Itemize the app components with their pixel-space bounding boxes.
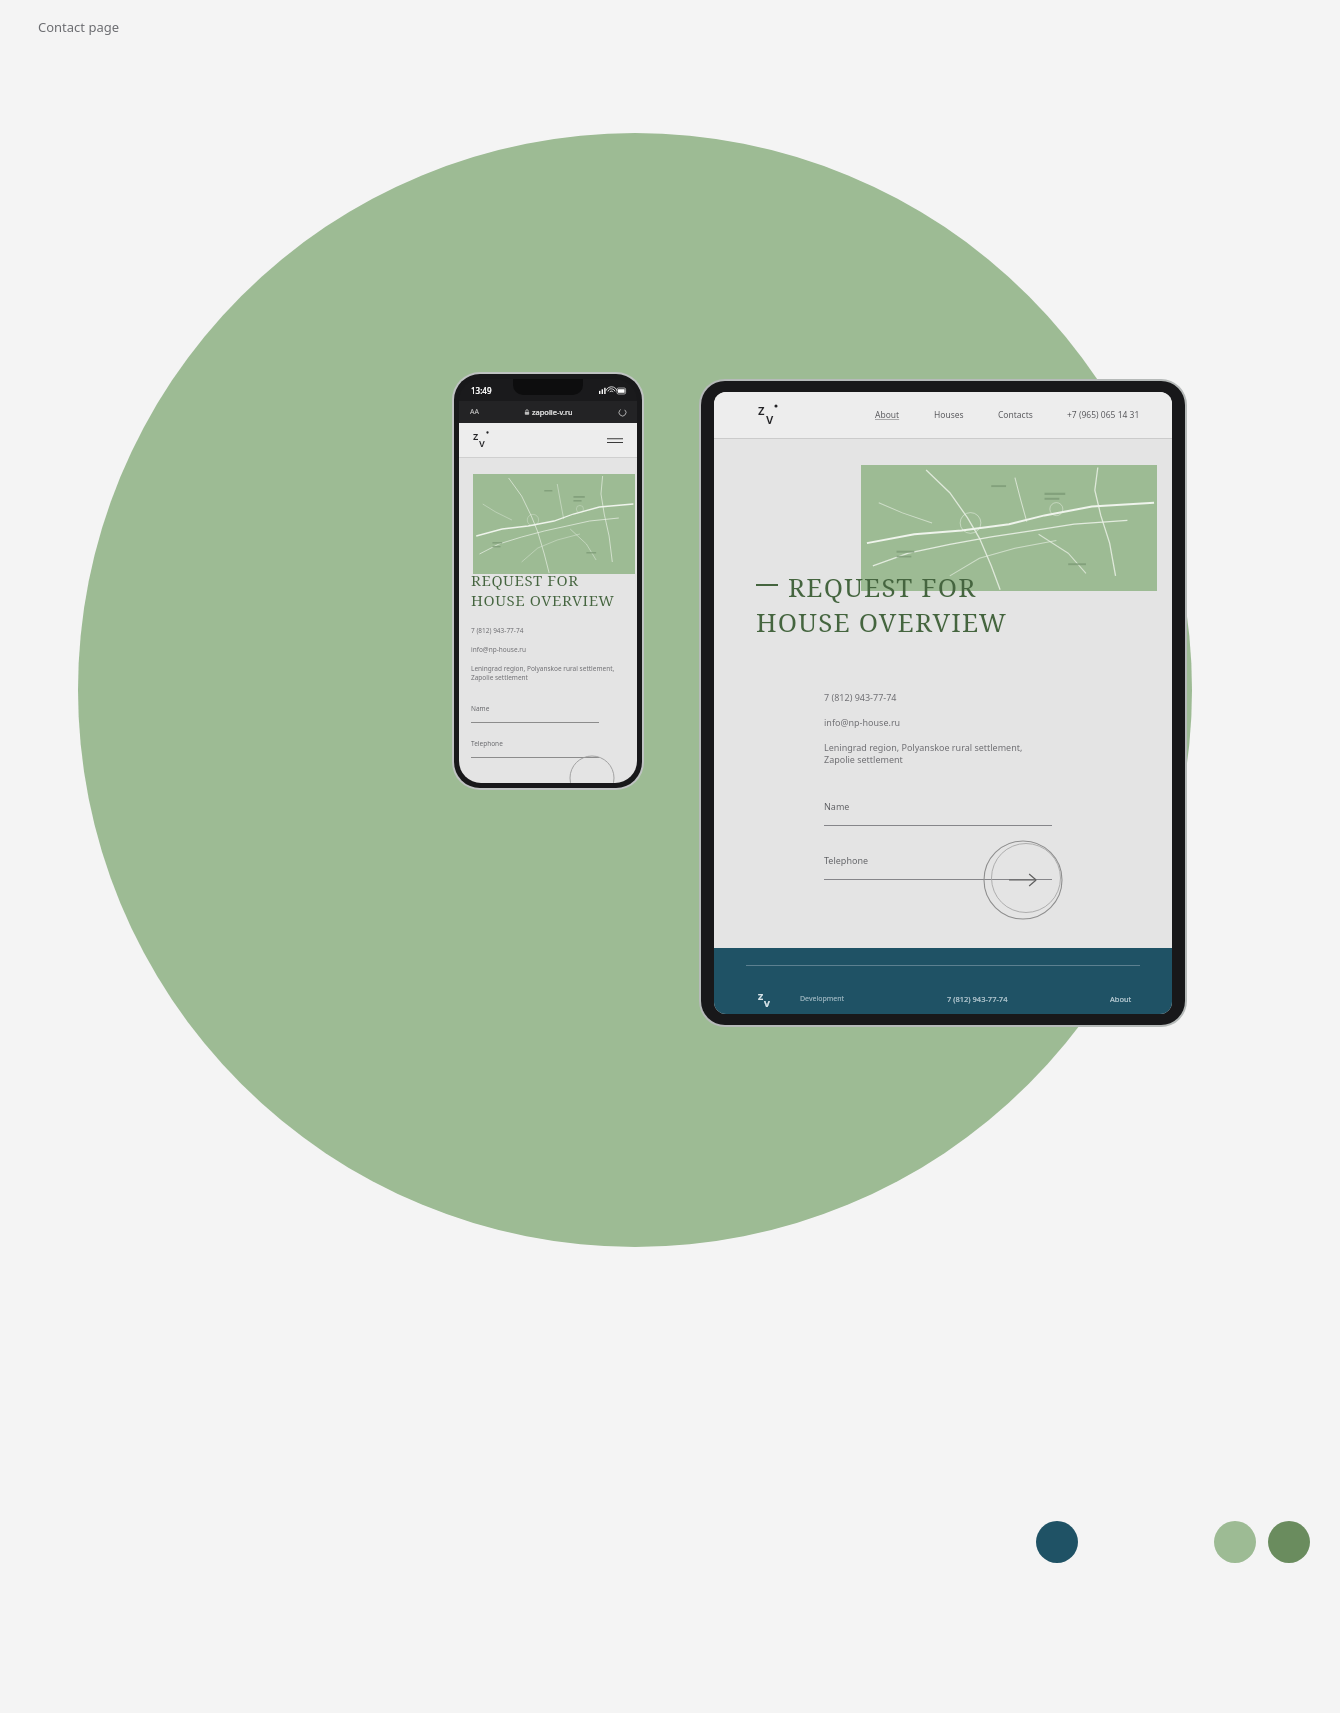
button[interactable]: Contacts [996,405,1035,425]
button[interactable]: 7 (812) 943-77-74 [471,626,524,635]
button[interactable]: Submit request [982,839,1064,921]
button[interactable]: Contact page [36,16,122,38]
staticText: Name [824,800,850,812]
button[interactable]: Zapolie logo [473,430,495,450]
staticText: Leningrad region, Polyanskoe rural settl… [824,741,1023,766]
button[interactable]: Name [824,800,1052,826]
staticText: Contacts [998,409,1033,421]
button[interactable]: Houses [932,405,966,425]
staticText: V [764,997,770,1009]
staticText: V [766,412,774,427]
staticText: Z [473,430,479,442]
button[interactable]: +7 (965) 065 14 31 [1065,405,1142,425]
button[interactable]: Zapolie logo [758,990,778,1008]
staticText: Development [800,994,845,1004]
staticText: Name [471,704,490,713]
other: Reload [619,409,626,416]
button[interactable]: info@np-house.ru [471,645,527,654]
staticText: About [875,409,900,421]
button[interactable]: Submit [569,755,615,783]
staticText: Z [758,990,764,1002]
button[interactable]: Telephone [824,854,1052,880]
staticText: Telephone [471,739,503,748]
staticText: Leningrad region, Polyanskoe rural settl… [471,664,615,682]
button[interactable]: Menu [607,436,623,445]
staticText: zapolie-v.ru [532,407,573,417]
staticText: V [479,437,485,449]
button[interactable]: About [873,405,902,425]
staticText: +7 (965) 065 14 31 [1067,409,1140,421]
staticText: REQUEST FOR [788,569,977,604]
button[interactable]: Sage green colour swatch [1214,1521,1256,1563]
staticText: 13:49 [471,385,492,396]
staticText: Houses [934,409,964,421]
button[interactable]: Teal colour swatch [1036,1521,1078,1563]
staticText: REQUEST FOR [471,570,579,590]
staticText: HOUSE OVERVIEW [471,590,615,610]
staticText: AA [470,407,479,417]
button[interactable]: info@np-house.ru [824,716,901,728]
staticText: HOUSE OVERVIEW [756,604,1008,639]
button[interactable]: Zapolie logo [758,403,786,428]
button[interactable]: Name [471,704,599,723]
button[interactable]: 7 (812) 943-77-74 [947,994,1008,1004]
staticText: Telephone [824,854,869,866]
staticText: Z [758,403,765,418]
button[interactable]: Telephone [471,739,599,758]
button[interactable]: 7 (812) 943-77-74 [824,691,897,703]
staticText: Contact page [38,18,120,36]
button[interactable]: Dark green colour swatch [1268,1521,1310,1563]
button[interactable]: About [1110,994,1132,1004]
